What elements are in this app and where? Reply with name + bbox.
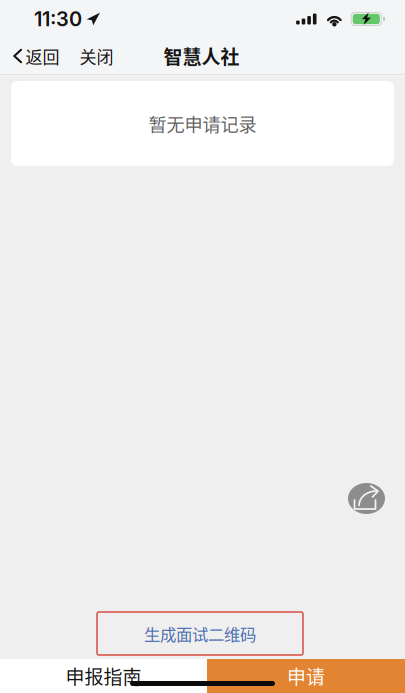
staticText: 申报指南	[65, 662, 141, 690]
staticText: 关闭	[79, 44, 113, 68]
button[interactable]: 申报指南	[0, 659, 207, 693]
staticText: 申请	[287, 662, 325, 690]
button[interactable]: 返回	[0, 36, 63, 76]
staticText: 生成面试二维码	[144, 622, 256, 645]
button[interactable]: 生成面试二维码	[97, 612, 303, 655]
staticText: 智慧人社	[163, 42, 239, 70]
button[interactable]: 申请	[207, 659, 405, 693]
staticText: 11:30	[34, 7, 82, 31]
staticText: 暂无申请记录	[148, 110, 256, 137]
staticText: 返回	[25, 44, 59, 68]
button[interactable]: 分享	[348, 483, 385, 514]
button[interactable]: 关闭	[63, 36, 121, 76]
